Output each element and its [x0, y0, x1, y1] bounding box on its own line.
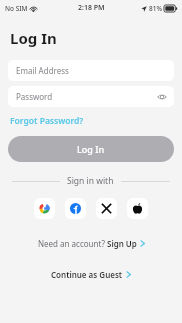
- staticText: No SIM: [5, 4, 28, 13]
- staticText: Forgot Password?: [10, 115, 84, 127]
- button[interactable]: Log In: [8, 136, 174, 162]
- staticText: Sign Up: [107, 238, 137, 249]
- button[interactable]: Continue as Guest: [0, 269, 182, 280]
- staticText: Password: [16, 91, 53, 102]
- staticText: Continue as Guest: [51, 269, 123, 280]
- staticText: Log In: [10, 28, 57, 48]
- staticText: Need an account?: [38, 238, 107, 249]
- staticText: 2:18 PM: [78, 3, 105, 13]
- button[interactable]: Password: [8, 86, 174, 107]
- button[interactable]: Sign in with Facebook: [65, 198, 86, 219]
- button[interactable]: Sign in with Apple: [127, 198, 148, 219]
- button[interactable]: Email Address: [8, 60, 174, 81]
- staticText: Sign in with: [67, 175, 114, 187]
- button[interactable]: Sign in with Google: [34, 198, 55, 219]
- button[interactable]: Sign in with X: [96, 198, 117, 219]
- button[interactable]: Show password: [155, 90, 169, 104]
- staticText: Log In: [77, 143, 105, 155]
- staticText: Email Address: [16, 65, 69, 76]
- button[interactable]: Forgot Password?: [8, 114, 86, 128]
- staticText: 81%: [149, 4, 162, 13]
- button[interactable]: Need an account?: [0, 238, 182, 249]
